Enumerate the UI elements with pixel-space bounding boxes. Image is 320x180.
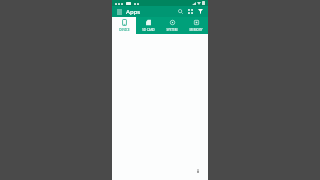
button[interactable]: SD CARD (136, 17, 160, 34)
button[interactable]: Open navigation drawer (115, 8, 123, 16)
staticText: SYSTEM (166, 28, 178, 32)
button[interactable]: SYSTEM (160, 17, 184, 34)
staticText: MEMORY (189, 28, 203, 32)
staticText: Apps (126, 8, 141, 16)
button[interactable]: Filter (196, 7, 205, 16)
button[interactable]: MEMORY (184, 17, 208, 34)
button[interactable]: Sort (196, 169, 200, 173)
button[interactable]: Search (176, 7, 185, 16)
button[interactable]: DEVICE (112, 17, 136, 34)
staticText: DEVICE (119, 28, 130, 32)
button[interactable]: Change view (186, 7, 195, 16)
staticText: SD CARD (142, 28, 155, 32)
